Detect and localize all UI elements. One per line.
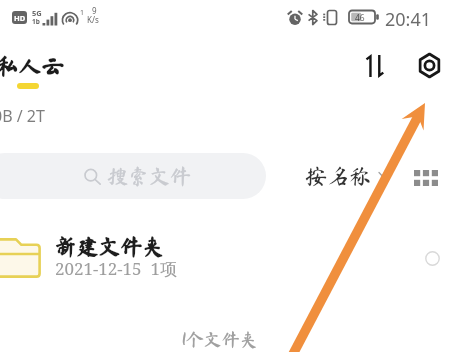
staticText: 按名称 [305,165,372,187]
button[interactable]: 搜索文件 [0,153,266,199]
staticText: 1个文件夹 [182,330,258,348]
staticText: 20:41 [385,7,432,32]
button[interactable] [0,225,465,291]
staticText: K/s [87,14,99,25]
staticText: 搜索文件 [107,166,191,187]
button[interactable]: Select folder [420,246,444,270]
staticText: 1 [80,8,85,18]
staticText: 2021-12-15 1项 [55,257,177,280]
staticText: 46 [355,12,365,24]
button[interactable]: Settings [410,46,448,84]
button[interactable]: Grid view [408,160,444,196]
staticText: 私人云 [0,55,64,78]
staticText: HD [14,13,26,23]
staticText: 5G [32,8,42,18]
button[interactable]: 按名称 [301,161,396,191]
staticText: 9 [92,5,97,16]
staticText: 新建文件夹 [54,236,165,258]
staticText: 0B / 2T [0,105,45,127]
staticText: 1b [32,17,40,26]
button[interactable]: Transfer list [356,47,394,85]
